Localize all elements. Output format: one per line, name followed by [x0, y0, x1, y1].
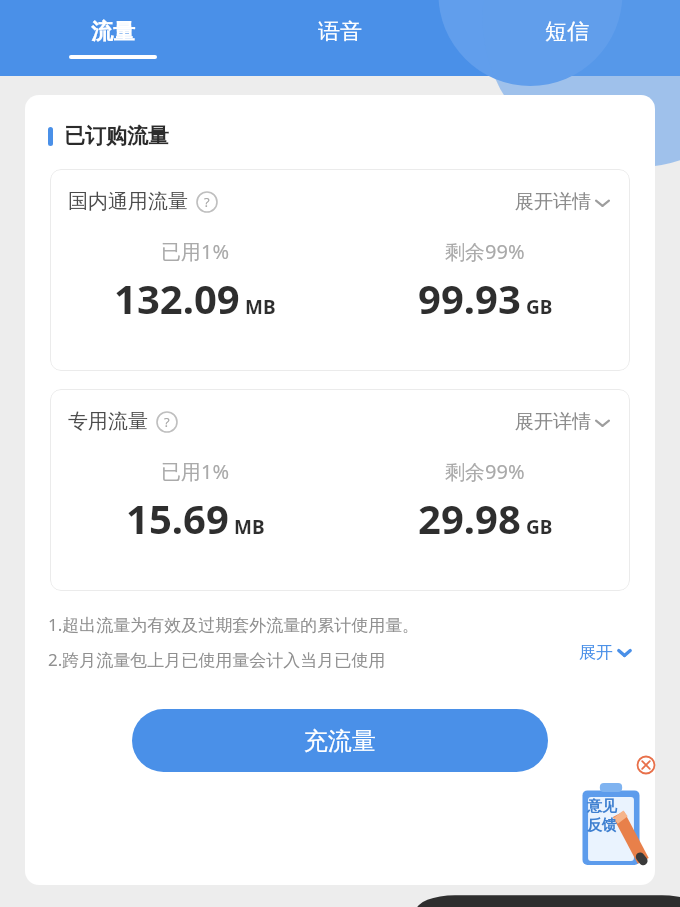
staticText: 15.69	[126, 491, 229, 545]
staticText: 流量	[91, 18, 135, 46]
staticText: MB	[245, 294, 276, 320]
staticText: 短信	[545, 18, 589, 46]
button[interactable]: 国内通用流量	[50, 169, 630, 371]
staticText: 专用流量	[68, 409, 148, 434]
staticText: 展开	[579, 642, 613, 663]
staticText: 充流量	[304, 726, 376, 756]
staticText: 剩余99%	[445, 458, 525, 485]
button[interactable]: 意见反馈	[580, 783, 642, 865]
staticText: GB	[526, 294, 553, 320]
staticText: 已用1%	[161, 458, 230, 485]
staticText: 国内通用流量	[68, 189, 188, 214]
staticText: 意见	[587, 797, 617, 816]
staticText: 语音	[318, 18, 362, 46]
button[interactable]: 展开详情	[515, 410, 612, 434]
staticText: 已订购流量	[64, 123, 169, 149]
staticText: 剩余99%	[445, 238, 525, 265]
staticText: 2.跨月流量包上月已使用量会计入当月已使用	[48, 648, 386, 671]
staticText: GB	[526, 514, 553, 540]
button[interactable]: 语音	[226, 0, 453, 76]
staticText: 132.09	[114, 271, 240, 325]
button[interactable]: 流量	[0, 0, 226, 76]
staticText: 反馈	[587, 816, 617, 835]
staticText: 已用1%	[161, 238, 230, 265]
staticText: 展开详情	[515, 410, 591, 434]
staticText: 29.98	[418, 491, 521, 545]
staticText: ?	[204, 193, 210, 211]
button[interactable]: 展开	[579, 642, 633, 663]
button[interactable]: 关闭	[636, 755, 656, 775]
button[interactable]: 专用流量	[50, 389, 630, 591]
staticText: MB	[234, 514, 265, 540]
button[interactable]: 短信	[453, 0, 680, 76]
staticText: 1.超出流量为有效及过期套外流量的累计使用量。	[48, 613, 420, 636]
staticText: ?	[164, 413, 170, 431]
button[interactable]: 展开详情	[515, 190, 612, 214]
staticText: 99.93	[418, 271, 521, 325]
button[interactable]: 充流量	[132, 709, 548, 772]
staticText: 展开详情	[515, 190, 591, 214]
